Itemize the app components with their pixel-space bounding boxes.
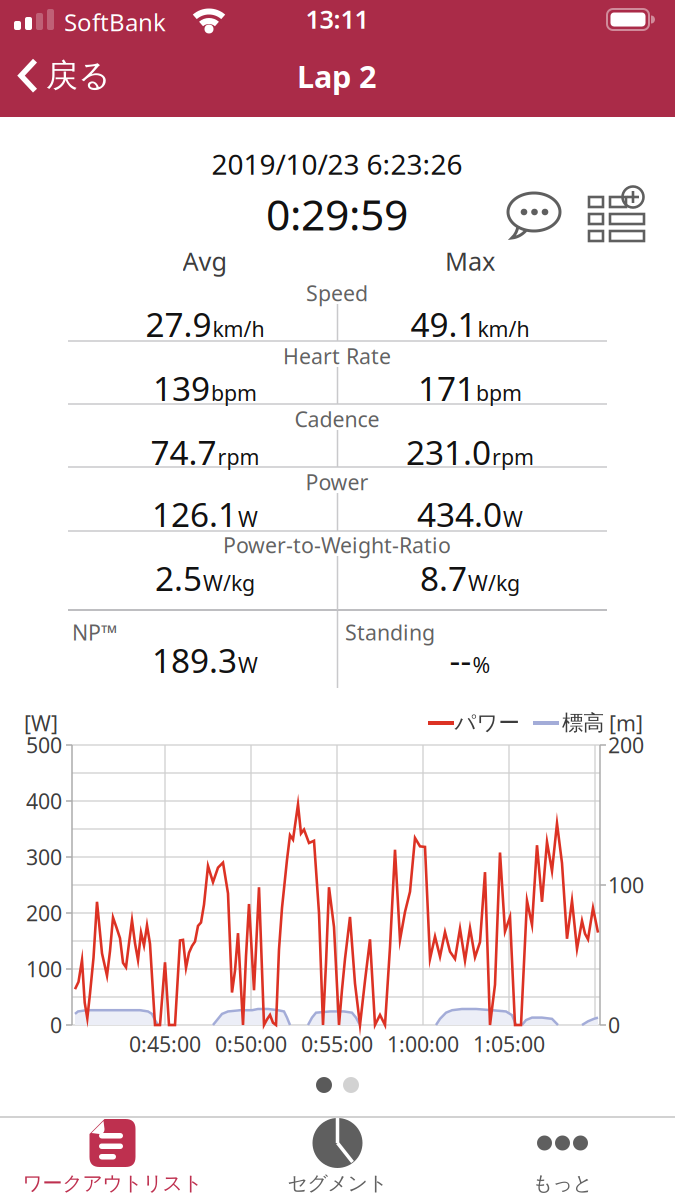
staticText: W	[238, 650, 258, 679]
staticText: 27.9	[145, 302, 211, 346]
staticText: W/kg	[468, 568, 520, 597]
staticText: ワークアウトリスト	[22, 1171, 202, 1196]
staticText: 200	[608, 731, 644, 759]
staticText: bpm	[211, 378, 257, 407]
staticText: [W]	[24, 709, 58, 737]
staticText: [m]	[609, 709, 643, 737]
button[interactable]: セグメント	[225, 1117, 450, 1200]
button[interactable]: ラップリストに追加	[586, 188, 646, 244]
staticText: 0:29:59	[266, 186, 408, 242]
staticText: 2.5	[155, 556, 202, 600]
staticText: 200	[26, 899, 62, 927]
staticText: %	[472, 650, 490, 679]
button[interactable]: 戻る	[18, 56, 111, 95]
staticText: Standing	[345, 618, 435, 646]
staticText: km/h	[212, 314, 264, 343]
staticText: SoftBank	[64, 6, 166, 38]
staticText: rpm	[217, 442, 259, 471]
staticText: 100	[26, 955, 62, 983]
staticText: 189.3	[152, 638, 237, 682]
staticText: 74.7	[150, 430, 216, 474]
button[interactable]: コメント	[504, 187, 564, 243]
staticText: 8.7	[420, 556, 467, 600]
button[interactable]: ワークアウトリスト	[0, 1117, 225, 1200]
staticText: rpm	[492, 442, 534, 471]
staticText: Max	[445, 244, 495, 278]
staticText: Power-to-Weight-Ratio	[223, 531, 451, 559]
staticText: W/kg	[203, 568, 255, 597]
staticText: 標高	[562, 710, 604, 736]
staticText: Avg	[182, 244, 227, 278]
staticText: W	[238, 504, 258, 533]
staticText: 171	[418, 366, 475, 410]
staticText: パワー	[454, 710, 519, 736]
staticText: 300	[26, 843, 62, 871]
staticText: 500	[26, 731, 62, 759]
staticText: 231.0	[406, 430, 491, 474]
staticText: Cadence	[294, 405, 379, 433]
staticText: km/h	[477, 314, 529, 343]
staticText: Speed	[306, 279, 368, 307]
staticText: Lap 2	[297, 56, 377, 96]
staticText: W	[503, 504, 523, 533]
staticText: 0:45:00	[129, 1030, 201, 1058]
staticText: セグメント	[287, 1171, 387, 1196]
staticText: 戻る	[46, 56, 111, 95]
staticText: 49.1	[410, 302, 476, 346]
staticText: Power	[305, 468, 368, 496]
staticText: 434.0	[417, 492, 502, 536]
button[interactable]: もっと	[450, 1117, 675, 1200]
staticText: 100	[608, 871, 644, 899]
staticText: 139	[153, 366, 210, 410]
staticText: bpm	[476, 378, 522, 407]
staticText: 2019/10/23 6:23:26	[211, 145, 462, 183]
staticText: 1:00:00	[387, 1030, 459, 1058]
staticText: 0	[50, 1011, 62, 1039]
staticText: 13:11	[305, 2, 368, 36]
staticText: もっと	[532, 1171, 592, 1196]
staticText: 0:55:00	[301, 1030, 373, 1058]
staticText: 400	[26, 787, 62, 815]
staticText: 0	[608, 1011, 620, 1039]
staticText: Heart Rate	[283, 342, 391, 370]
staticText: 0:50:00	[215, 1030, 287, 1058]
staticText: NP™	[72, 618, 117, 646]
staticText: 126.1	[152, 492, 237, 536]
staticText: 1:05:00	[473, 1030, 545, 1058]
staticText: --	[449, 638, 471, 682]
